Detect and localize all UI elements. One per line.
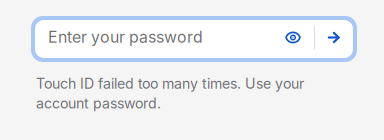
staticText: Touch ID failed too many times. Use your… bbox=[36, 75, 304, 112]
button[interactable]: Show password bbox=[272, 20, 314, 58]
staticText: Enter your password bbox=[48, 27, 203, 47]
button[interactable]: Submit password bbox=[315, 20, 353, 58]
